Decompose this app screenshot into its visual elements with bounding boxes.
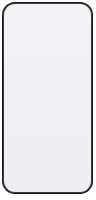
button[interactable]: Phone device frame <box>2 2 93 194</box>
button[interactable]: Blank screen <box>4 4 91 192</box>
